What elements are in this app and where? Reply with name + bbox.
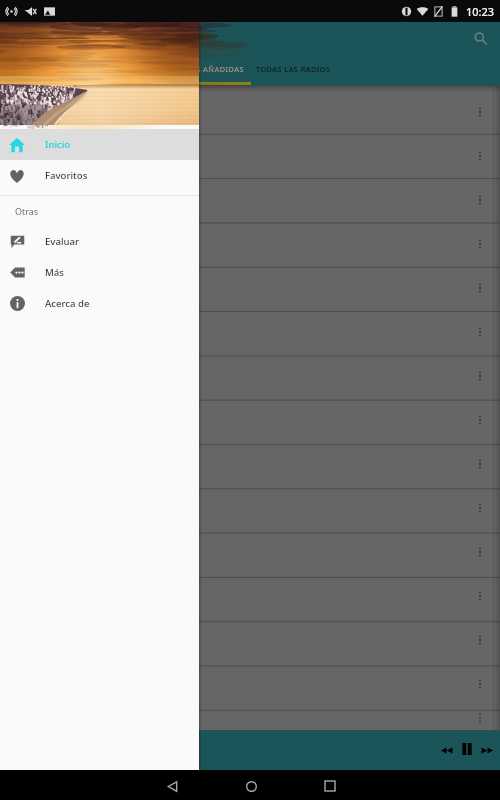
button[interactable]: Más opciones — [470, 190, 490, 210]
staticText: Favoritos — [45, 169, 88, 182]
button[interactable]: Más opciones — [0, 222, 500, 266]
button[interactable]: Más opciones — [0, 662, 500, 706]
staticText: TODAS LAS RADIOS — [256, 64, 331, 74]
button[interactable]: Inicio — [0, 129, 199, 160]
button[interactable]: Más — [0, 257, 199, 288]
button[interactable]: Más opciones — [470, 146, 490, 166]
button[interactable]: Cerrar menú — [0, 86, 500, 730]
button[interactable]: Avanzar — [474, 737, 500, 763]
button[interactable]: Más opciones — [470, 498, 490, 518]
button[interactable]: Más opciones — [0, 530, 500, 574]
button[interactable]: Más opciones — [0, 574, 500, 618]
button[interactable]: Más opciones — [0, 90, 500, 134]
button[interactable]: Más opciones — [470, 234, 490, 254]
button[interactable]: Más opciones — [470, 630, 490, 650]
button[interactable]: Acerca de — [0, 288, 199, 319]
button[interactable]: RADIOS AÑADIDAS — [146, 56, 244, 82]
button[interactable]: Recientes — [316, 772, 344, 800]
staticText: RADIOS AÑADIDAS — [171, 64, 244, 74]
button[interactable]: Cabecera — [0, 22, 199, 125]
button[interactable]: Más opciones — [0, 486, 500, 530]
staticText: Otras — [15, 205, 39, 217]
button[interactable]: Más opciones — [0, 398, 500, 442]
button[interactable]: Más opciones — [470, 454, 490, 474]
staticText: Evaluar — [45, 235, 80, 248]
button[interactable]: Más opciones — [470, 410, 490, 430]
button[interactable]: Más opciones — [0, 134, 500, 178]
button[interactable]: Pausa — [454, 736, 480, 762]
button[interactable]: Rebobinar — [433, 737, 459, 763]
staticText: Más — [45, 266, 64, 279]
staticText: Acerca de — [45, 297, 90, 310]
button[interactable]: Más opciones — [0, 706, 500, 730]
button[interactable]: Más opciones — [0, 178, 500, 222]
button[interactable]: Más opciones — [0, 310, 500, 354]
button[interactable]: Más opciones — [470, 278, 490, 298]
button[interactable]: Más opciones — [470, 322, 490, 342]
staticText: Inicio — [45, 138, 71, 151]
button[interactable]: Más opciones — [0, 354, 500, 398]
button[interactable]: Favoritos — [0, 160, 199, 191]
button[interactable]: Atrás — [158, 772, 186, 800]
button[interactable]: Más opciones — [470, 366, 490, 386]
button[interactable]: Más opciones — [470, 586, 490, 606]
button[interactable]: Más opciones — [0, 266, 500, 310]
button[interactable]: Más opciones — [470, 674, 490, 694]
button[interactable]: Más opciones — [0, 618, 500, 662]
button[interactable]: Más opciones — [470, 708, 490, 728]
button[interactable]: Buscar — [468, 26, 492, 50]
staticText: 10:23 — [466, 4, 495, 19]
button[interactable]: TODAS LAS RADIOS — [255, 56, 331, 82]
button[interactable]: Evaluar — [0, 226, 199, 257]
button[interactable]: Más opciones — [470, 542, 490, 562]
button[interactable]: Más opciones — [470, 102, 490, 122]
button[interactable]: Más opciones — [0, 442, 500, 486]
button[interactable]: Inicio — [237, 772, 265, 800]
